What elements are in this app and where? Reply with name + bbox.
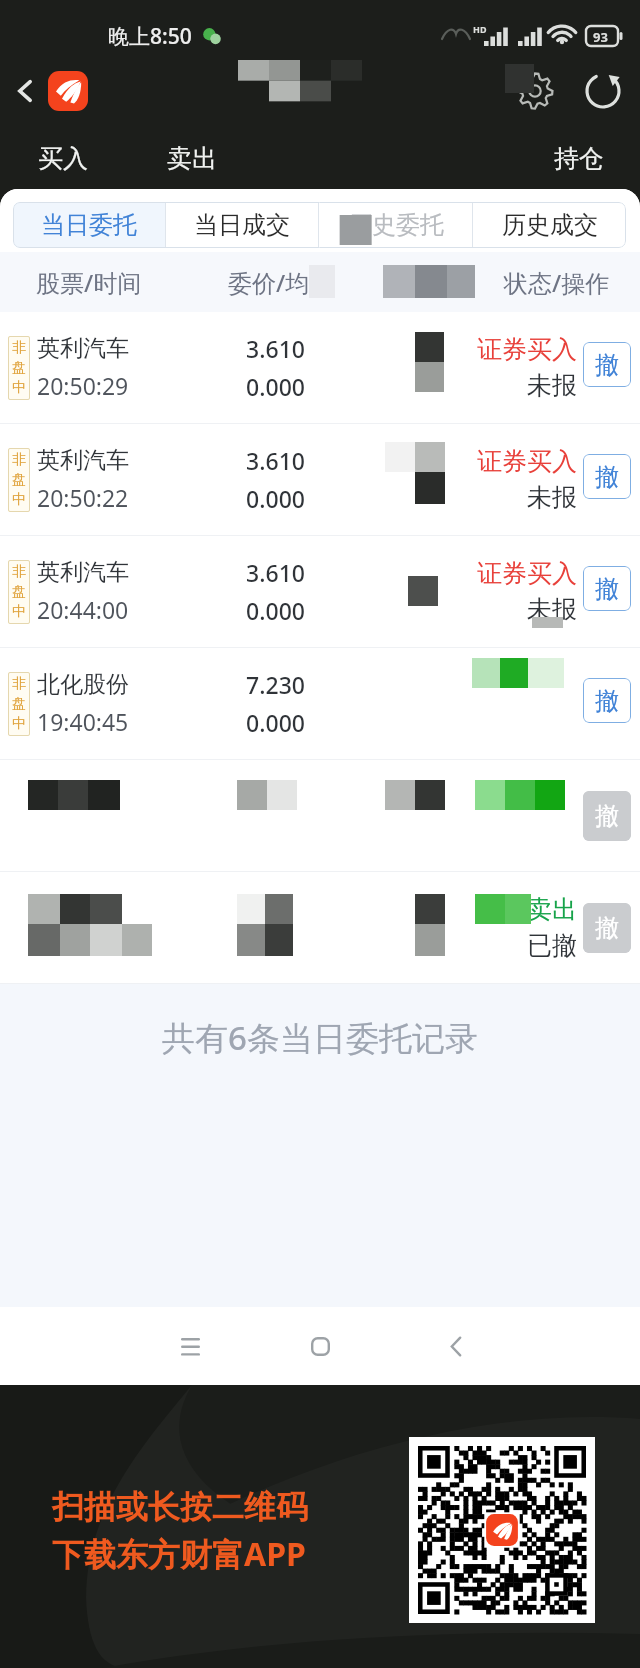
- button[interactable]: 非: [0, 648, 640, 759]
- staticText: 非: [12, 675, 26, 693]
- staticText: 未报: [527, 370, 577, 401]
- staticText: 下载东方财富APP: [52, 1532, 306, 1576]
- staticText: 共有6条当日委托记录: [162, 1015, 478, 1060]
- staticText: 当日成交: [194, 210, 290, 240]
- staticText: 卖出: [527, 894, 577, 925]
- staticText: HD: [473, 23, 487, 35]
- button[interactable]: 撤: [583, 342, 631, 387]
- button[interactable]: 卖出: [167, 143, 217, 174]
- button[interactable]: Refresh: [580, 68, 626, 114]
- staticText: 20:44:00: [37, 594, 129, 625]
- staticText: 英利汽车: [37, 334, 129, 363]
- staticText: 北化股份: [37, 670, 129, 699]
- staticText: 盘: [12, 583, 26, 601]
- staticText: 撤: [595, 913, 619, 943]
- staticText: 中: [12, 715, 26, 733]
- staticText: 非: [12, 339, 26, 357]
- staticText: 当日委托: [41, 210, 137, 240]
- staticText: 未报: [527, 482, 577, 513]
- staticText: 未报: [527, 594, 577, 625]
- staticText: 非: [12, 563, 26, 581]
- staticText: 撤: [595, 801, 619, 831]
- staticText: 0.000: [246, 371, 305, 402]
- button[interactable]: 卖出: [0, 872, 640, 983]
- button[interactable]: East Money logo: [48, 71, 88, 111]
- button[interactable]: 撤: [583, 566, 631, 611]
- staticText: 3.610: [246, 333, 305, 364]
- button[interactable]: 非: [0, 312, 640, 423]
- button[interactable]: 非: [0, 536, 640, 647]
- staticText: 证券买入: [477, 334, 577, 365]
- staticText: 0.000: [246, 483, 305, 514]
- staticText: 93: [593, 28, 608, 46]
- staticText: 盘: [12, 471, 26, 489]
- staticText: 0.000: [246, 707, 305, 738]
- staticText: 中: [12, 491, 26, 509]
- button[interactable]: 非: [0, 424, 640, 535]
- button[interactable]: 历史委托: [319, 202, 472, 248]
- staticText: 20:50:29: [37, 370, 129, 401]
- button[interactable]: 买入: [38, 143, 88, 174]
- button[interactable]: 撤: [0, 760, 640, 871]
- button[interactable]: Customer service: [512, 68, 558, 114]
- staticText: 证券买入: [477, 446, 577, 477]
- staticText: 委价/均价: [228, 266, 334, 299]
- button[interactable]: 撤: [583, 454, 631, 499]
- staticText: 中: [12, 379, 26, 397]
- button[interactable]: Recent apps: [162, 1318, 218, 1374]
- staticText: 盘: [12, 695, 26, 713]
- staticText: 证券买入: [477, 558, 577, 589]
- button[interactable]: 持仓: [554, 143, 604, 174]
- staticText: 7.230: [246, 669, 305, 700]
- staticText: 19:40:45: [37, 706, 129, 737]
- staticText: 撤: [595, 686, 619, 716]
- staticText: 历史委托: [348, 210, 444, 240]
- staticText: 股票/时间: [36, 266, 142, 299]
- button[interactable]: 撤: [583, 678, 631, 723]
- staticText: 撤: [595, 350, 619, 380]
- staticText: 中: [12, 603, 26, 621]
- button[interactable]: 当日委托: [13, 202, 165, 248]
- staticText: 晚上8:50: [108, 22, 192, 51]
- button[interactable]: Back: [428, 1318, 484, 1374]
- staticText: 历史成交: [502, 210, 598, 240]
- button[interactable]: Back: [8, 74, 42, 108]
- button[interactable]: 撤: [583, 791, 631, 841]
- staticText: 20:50:22: [37, 482, 129, 513]
- staticText: 已撤: [527, 930, 577, 961]
- staticText: 非: [12, 451, 26, 469]
- staticText: 3.610: [246, 445, 305, 476]
- staticText: 盘: [12, 359, 26, 377]
- staticText: 状态/操作: [504, 266, 610, 299]
- button[interactable]: 当日成交: [166, 202, 318, 248]
- button[interactable]: Home: [292, 1318, 348, 1374]
- staticText: 撤: [595, 574, 619, 604]
- staticText: 扫描或长按二维码: [52, 1487, 308, 1527]
- staticText: 撤: [595, 462, 619, 492]
- staticText: 0.000: [246, 595, 305, 626]
- staticText: 英利汽车: [37, 446, 129, 475]
- staticText: 3.610: [246, 557, 305, 588]
- staticText: 英利汽车: [37, 558, 129, 587]
- button[interactable]: 历史成交: [473, 202, 626, 248]
- button[interactable]: 撤: [583, 903, 631, 953]
